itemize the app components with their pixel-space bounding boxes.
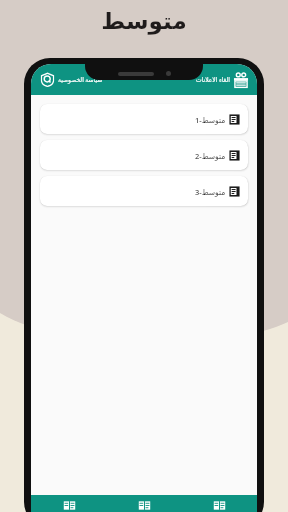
staticText: متوسط-3 [195,187,226,197]
staticText: سياسة الخصوصية [58,76,103,84]
button[interactable]: سياسة الخصوصية [37,70,106,89]
button[interactable]: متوسط-1 [40,104,248,134]
button[interactable]: ابتدائي [31,495,107,512]
staticText: الغاء الاعلانات [196,76,230,84]
staticText: متوسط [101,8,187,35]
button[interactable]: متوسط [182,495,257,512]
staticText: متوسط-1 [195,115,226,125]
button[interactable]: متوسط-2 [40,140,248,170]
button[interactable]: ثانوي [107,495,182,512]
staticText: متوسط-2 [195,151,226,161]
button[interactable]: الغاء الاعلانات [193,70,252,90]
button[interactable]: متوسط-3 [40,176,248,206]
